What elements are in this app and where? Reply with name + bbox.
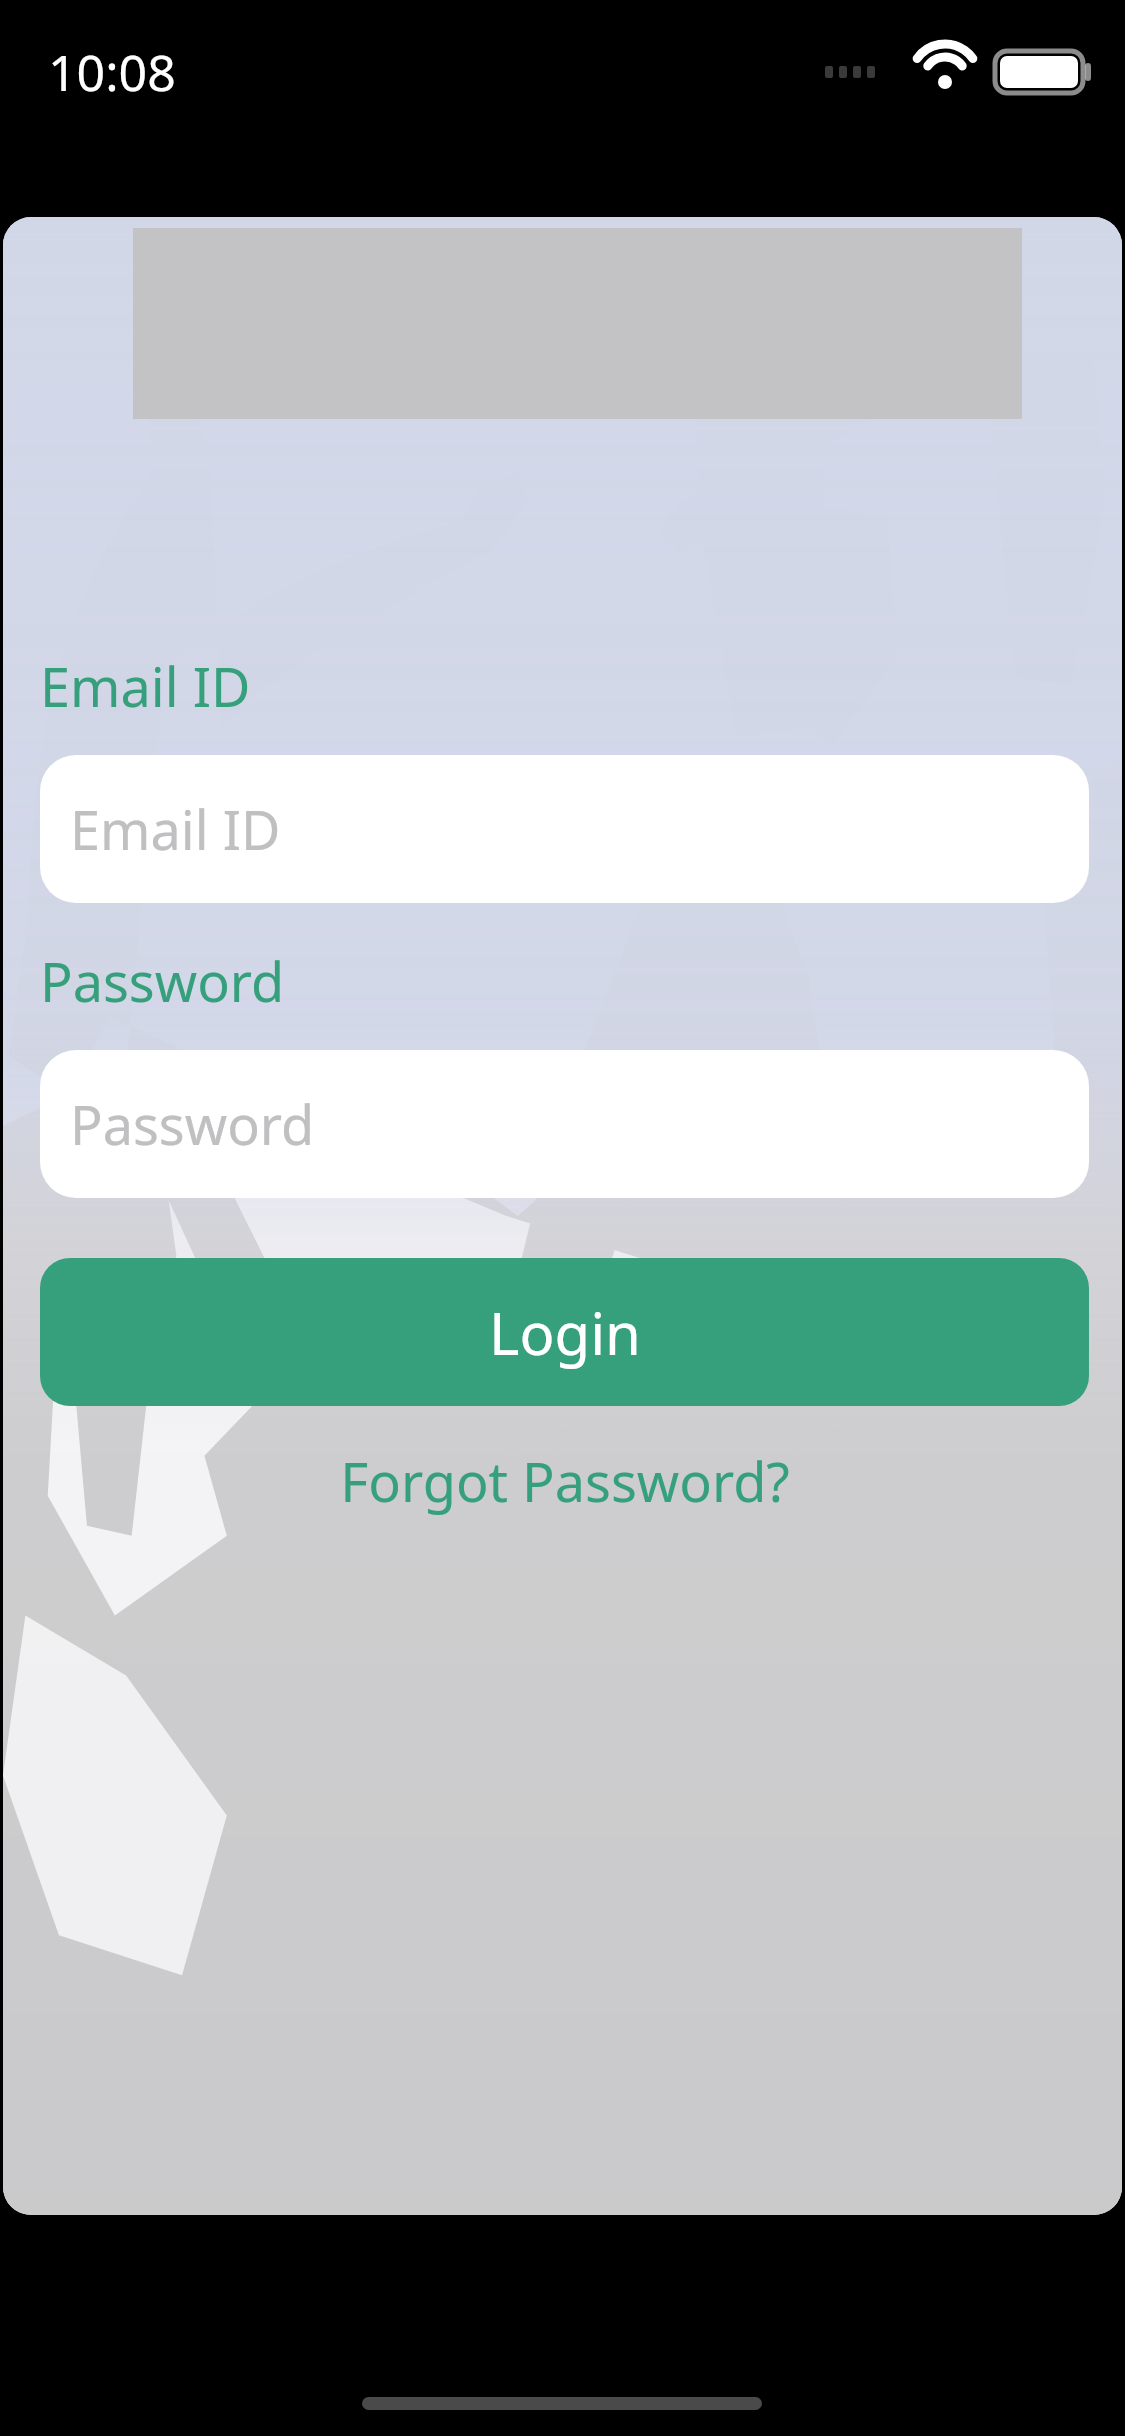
staticText: Email ID <box>70 792 281 866</box>
staticText: Login <box>489 1293 641 1372</box>
button[interactable]: Login <box>40 1258 1089 1406</box>
staticText: Email ID <box>40 649 251 723</box>
button[interactable]: Email ID <box>40 755 1089 903</box>
staticText: Password <box>70 1087 315 1161</box>
staticText: 10:08 <box>48 38 176 106</box>
staticText: Forgot Password? <box>340 1444 790 1518</box>
staticText: Password <box>40 944 285 1018</box>
button[interactable]: Password <box>40 1050 1089 1198</box>
button[interactable]: Forgot Password? <box>40 1439 1089 1523</box>
